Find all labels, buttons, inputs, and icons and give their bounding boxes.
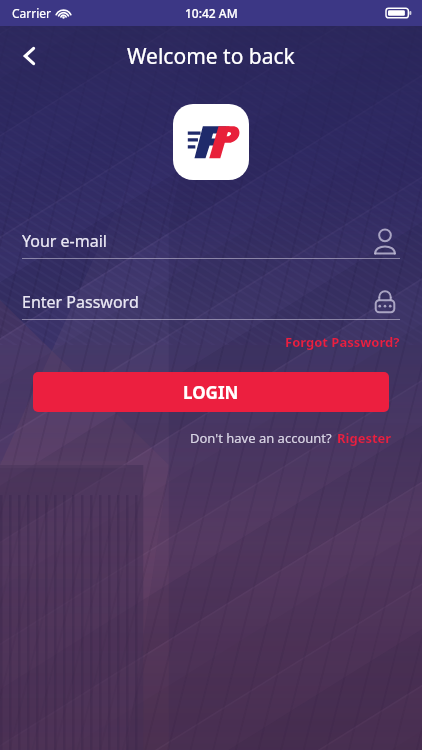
staticText: Welcome to back: [127, 42, 295, 71]
button[interactable]: Forgot Password?: [285, 330, 400, 354]
button[interactable]: Enter Password: [22, 285, 400, 320]
staticText: Rigester: [337, 429, 392, 447]
staticText: Don't have an account?: [190, 429, 332, 447]
staticText: 10:42 AM: [185, 5, 238, 21]
staticText: Enter Password: [22, 291, 139, 313]
button[interactable]: Rigester: [337, 426, 392, 450]
staticText: Carrier: [12, 5, 52, 21]
button[interactable]: LOGIN: [33, 372, 389, 412]
staticText: Your e-mail: [22, 230, 107, 252]
button[interactable]: Back: [8, 34, 52, 78]
staticText: Forgot Password?: [285, 333, 400, 351]
staticText: LOGIN: [183, 381, 239, 404]
button[interactable]: Your e-mail: [22, 224, 400, 259]
